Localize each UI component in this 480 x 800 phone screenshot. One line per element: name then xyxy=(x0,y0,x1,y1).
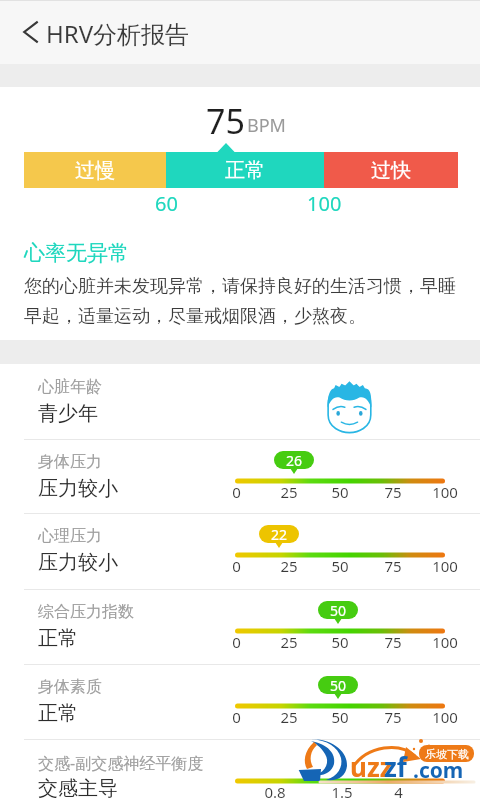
staticText: 综合压力指数 xyxy=(38,602,134,622)
staticText: 50 xyxy=(330,601,347,619)
staticText: 22 xyxy=(271,525,288,543)
staticText: 您的心脏并未发现异常，请保持良好的生活习惯，早睡 早起，适量运动，尽量戒烟限酒，… xyxy=(24,275,476,327)
staticText: 0 xyxy=(232,482,241,502)
staticText: 正常 xyxy=(38,701,78,726)
staticText: 0 xyxy=(232,707,241,727)
button[interactable]: 心脏年龄 xyxy=(0,364,480,439)
staticText: 交感-副交感神经平衡度 xyxy=(38,752,204,774)
staticText: .com xyxy=(413,756,464,785)
staticText: 压力较小 xyxy=(38,550,118,575)
button[interactable]: 过快 xyxy=(324,152,458,188)
button[interactable]: 正常 xyxy=(166,152,324,188)
staticText: HRV分析报告 xyxy=(46,17,190,50)
staticText: 50 xyxy=(331,632,349,652)
staticText: 100 xyxy=(432,632,458,652)
button[interactable]: Back xyxy=(7,8,55,56)
staticText: uzz xyxy=(350,749,393,784)
staticText: 过慢 xyxy=(75,158,115,183)
staticText: 心率无异常 xyxy=(24,240,129,266)
staticText: 25 xyxy=(280,556,298,576)
staticText: 正常 xyxy=(38,626,78,651)
staticText: 75 xyxy=(384,707,402,727)
staticText: 过快 xyxy=(371,158,411,183)
staticText: 100 xyxy=(432,556,458,576)
staticText: 25 xyxy=(280,632,298,652)
staticText: 50 xyxy=(330,676,347,694)
button[interactable]: 综合压力指数 xyxy=(0,589,480,664)
staticText: 50 xyxy=(331,556,349,576)
staticText: 25 xyxy=(280,707,298,727)
staticText: 0 xyxy=(232,632,241,652)
staticText: 50 xyxy=(331,482,349,502)
staticText: BPM xyxy=(247,113,286,138)
staticText: 正常 xyxy=(225,158,265,183)
staticText: 100 xyxy=(432,482,458,502)
staticText: 心脏年龄 xyxy=(38,377,102,397)
staticText: 压力较小 xyxy=(38,476,118,501)
staticText: 4 xyxy=(394,782,403,800)
staticText: 60 xyxy=(155,190,178,217)
staticText: 25 xyxy=(280,482,298,502)
staticText: 1.5 xyxy=(331,782,353,800)
staticText: 75 xyxy=(384,632,402,652)
staticText: 75 xyxy=(384,482,402,502)
staticText: 身体压力 xyxy=(38,452,102,472)
staticText: 乐坡下载 xyxy=(425,747,469,761)
button[interactable]: 过慢 xyxy=(24,152,166,188)
button[interactable]: 心理压力 xyxy=(0,513,480,589)
staticText: 100 xyxy=(432,707,458,727)
staticText: 26 xyxy=(286,451,303,469)
staticText: 青少年 xyxy=(38,401,98,426)
staticText: 交感主导 xyxy=(38,776,118,800)
staticText: 心理压力 xyxy=(38,526,102,546)
button[interactable]: 身体压力 xyxy=(0,439,480,514)
staticText: 0.8 xyxy=(264,782,286,800)
staticText: 50 xyxy=(331,707,349,727)
staticText: 75 xyxy=(206,98,245,144)
staticText: 100 xyxy=(307,190,342,217)
staticText: zf xyxy=(384,749,407,784)
staticText: 0 xyxy=(232,556,241,576)
button[interactable]: 交感-副交感神经平衡度 xyxy=(0,739,480,800)
staticText: 身体素质 xyxy=(38,677,102,697)
staticText: 75 xyxy=(384,556,402,576)
button[interactable]: 身体素质 xyxy=(0,664,480,739)
